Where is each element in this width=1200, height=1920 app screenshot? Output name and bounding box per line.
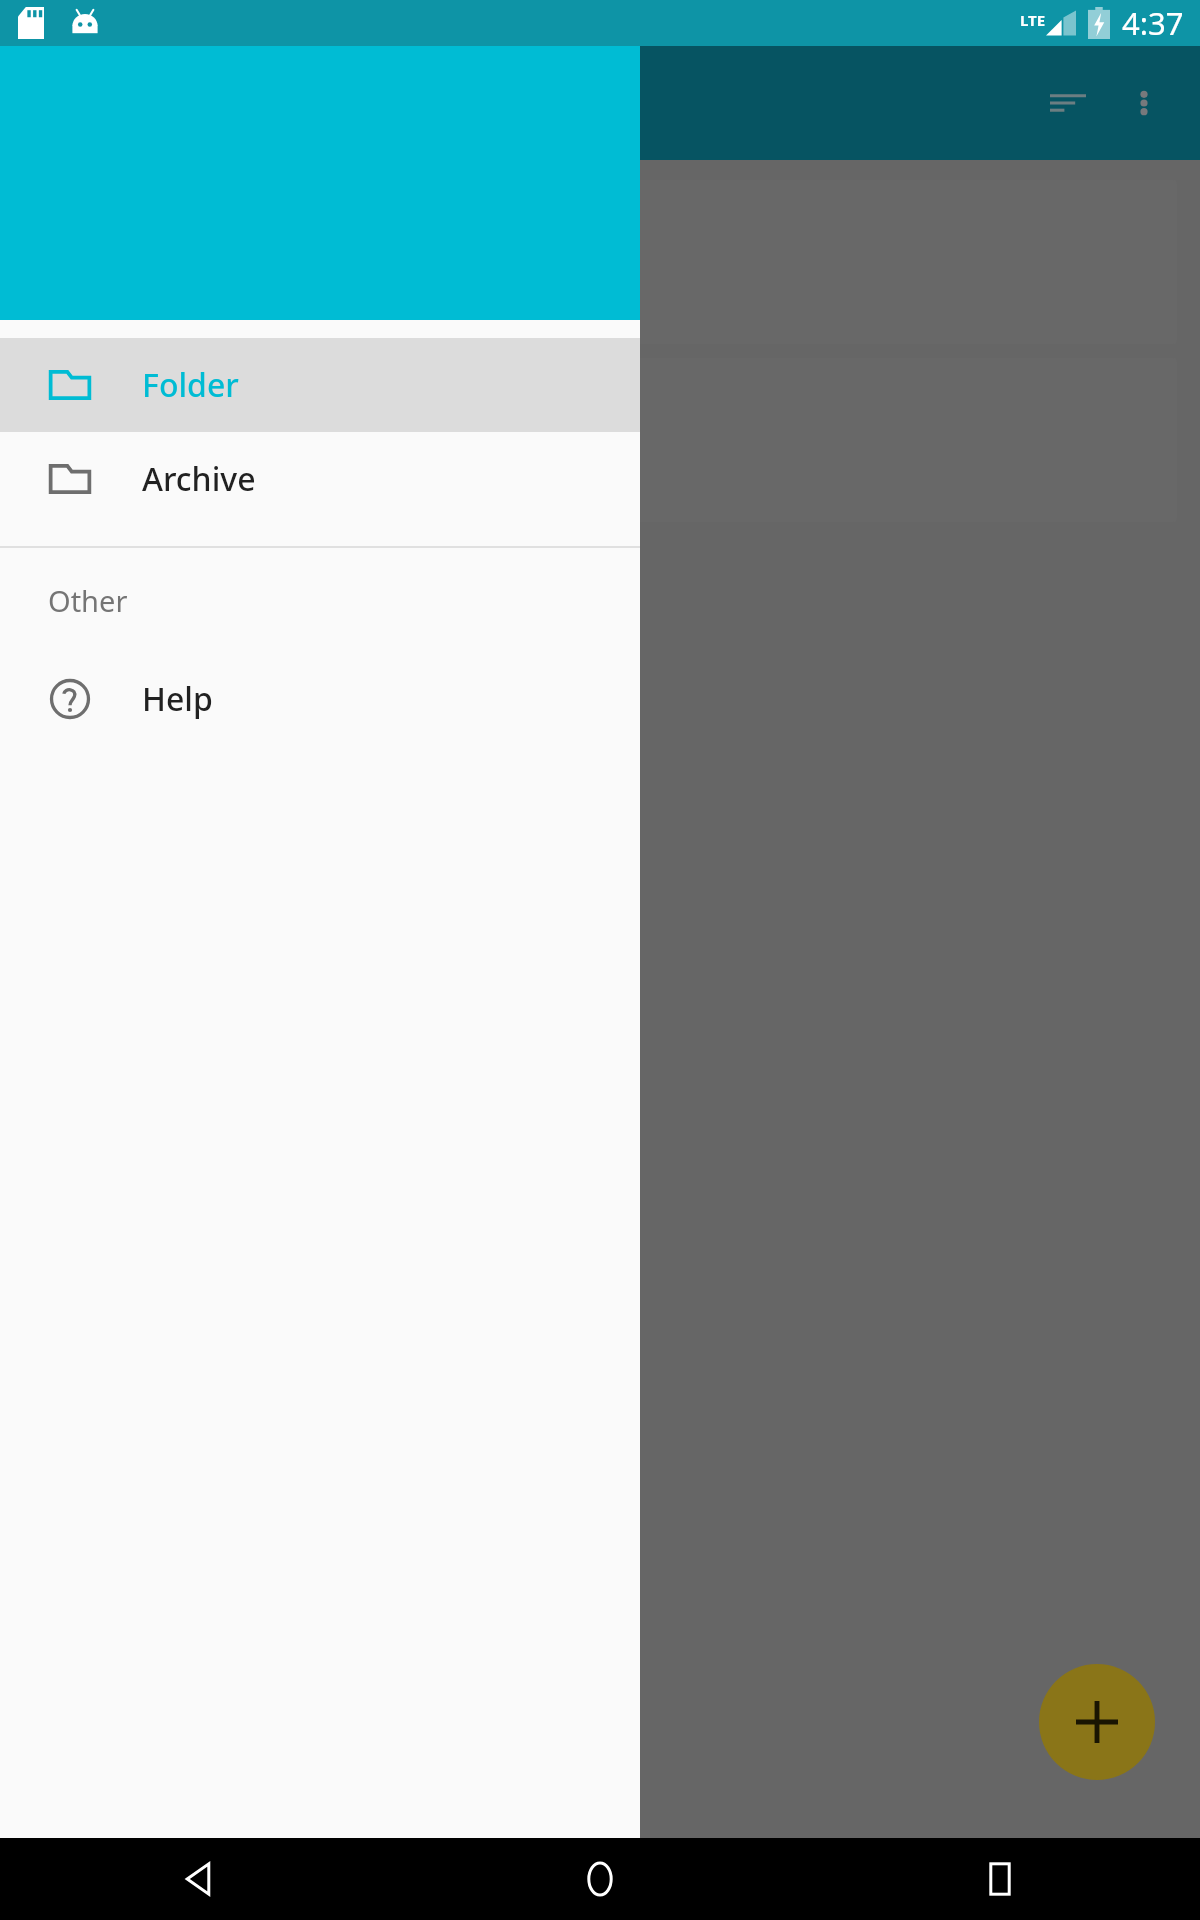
button[interactable]: A brief explanation of goals. SMART bbox=[23, 358, 1177, 522]
staticText: Help bbox=[142, 677, 213, 721]
button[interactable]: Add bbox=[1039, 1664, 1155, 1780]
button[interactable]: Recent apps bbox=[800, 1838, 1200, 1920]
staticText: A brief explanation of goals. SMART bbox=[49, 433, 566, 475]
staticText: LTE bbox=[1020, 10, 1046, 30]
button[interactable]: Archive bbox=[0, 432, 640, 526]
staticText: 4:37 bbox=[1122, 2, 1184, 44]
button[interactable]: Folder bbox=[0, 338, 640, 432]
button[interactable]: Back bbox=[0, 1838, 400, 1920]
button[interactable]: Help bbox=[0, 652, 640, 746]
button[interactable] bbox=[23, 180, 1177, 344]
staticText: Folder bbox=[142, 363, 239, 407]
button[interactable]: More options bbox=[1106, 65, 1182, 141]
button[interactable]: Sort bbox=[1030, 65, 1106, 141]
button[interactable]: Home bbox=[400, 1838, 800, 1920]
staticText: Other bbox=[48, 581, 128, 620]
staticText: Archive bbox=[142, 457, 256, 501]
